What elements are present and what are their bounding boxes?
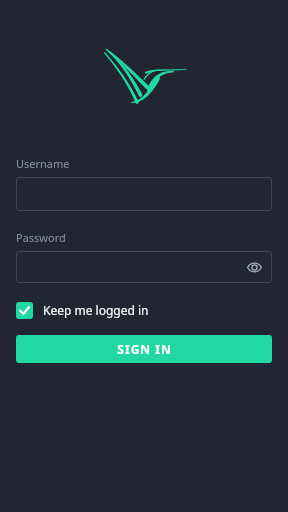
button[interactable]: Show password <box>244 257 264 277</box>
button[interactable]: SIGN IN <box>16 335 272 363</box>
staticText: Password <box>16 230 66 245</box>
button[interactable]: Keep me logged in <box>16 297 149 323</box>
staticText: Username <box>16 156 70 171</box>
staticText: SIGN IN <box>117 341 172 357</box>
staticText: Keep me logged in <box>43 302 149 318</box>
button[interactable]: Show password <box>16 251 272 283</box>
other: App logo <box>101 47 187 103</box>
button[interactable] <box>16 177 272 211</box>
